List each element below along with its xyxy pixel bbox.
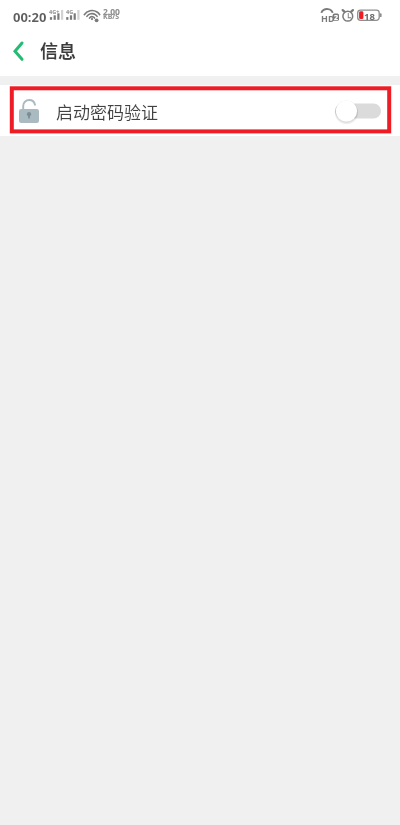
staticText: 4G bbox=[66, 8, 74, 15]
staticText: HD bbox=[321, 12, 335, 24]
staticText: 4G+ bbox=[49, 8, 60, 15]
button[interactable]: 返回 bbox=[0, 31, 36, 76]
staticText: 2 bbox=[334, 13, 339, 23]
button[interactable]: 启动密码验证 bbox=[0, 85, 400, 136]
button[interactable]: 启动密码验证 bbox=[335, 99, 381, 123]
staticText: 18 bbox=[364, 10, 375, 23]
staticText: 00:20 bbox=[13, 8, 47, 26]
staticText: 信息 bbox=[40, 37, 76, 63]
staticText: 2.00 bbox=[103, 6, 120, 18]
staticText: 启动密码验证 bbox=[56, 99, 158, 124]
staticText: KB/S bbox=[103, 12, 120, 22]
